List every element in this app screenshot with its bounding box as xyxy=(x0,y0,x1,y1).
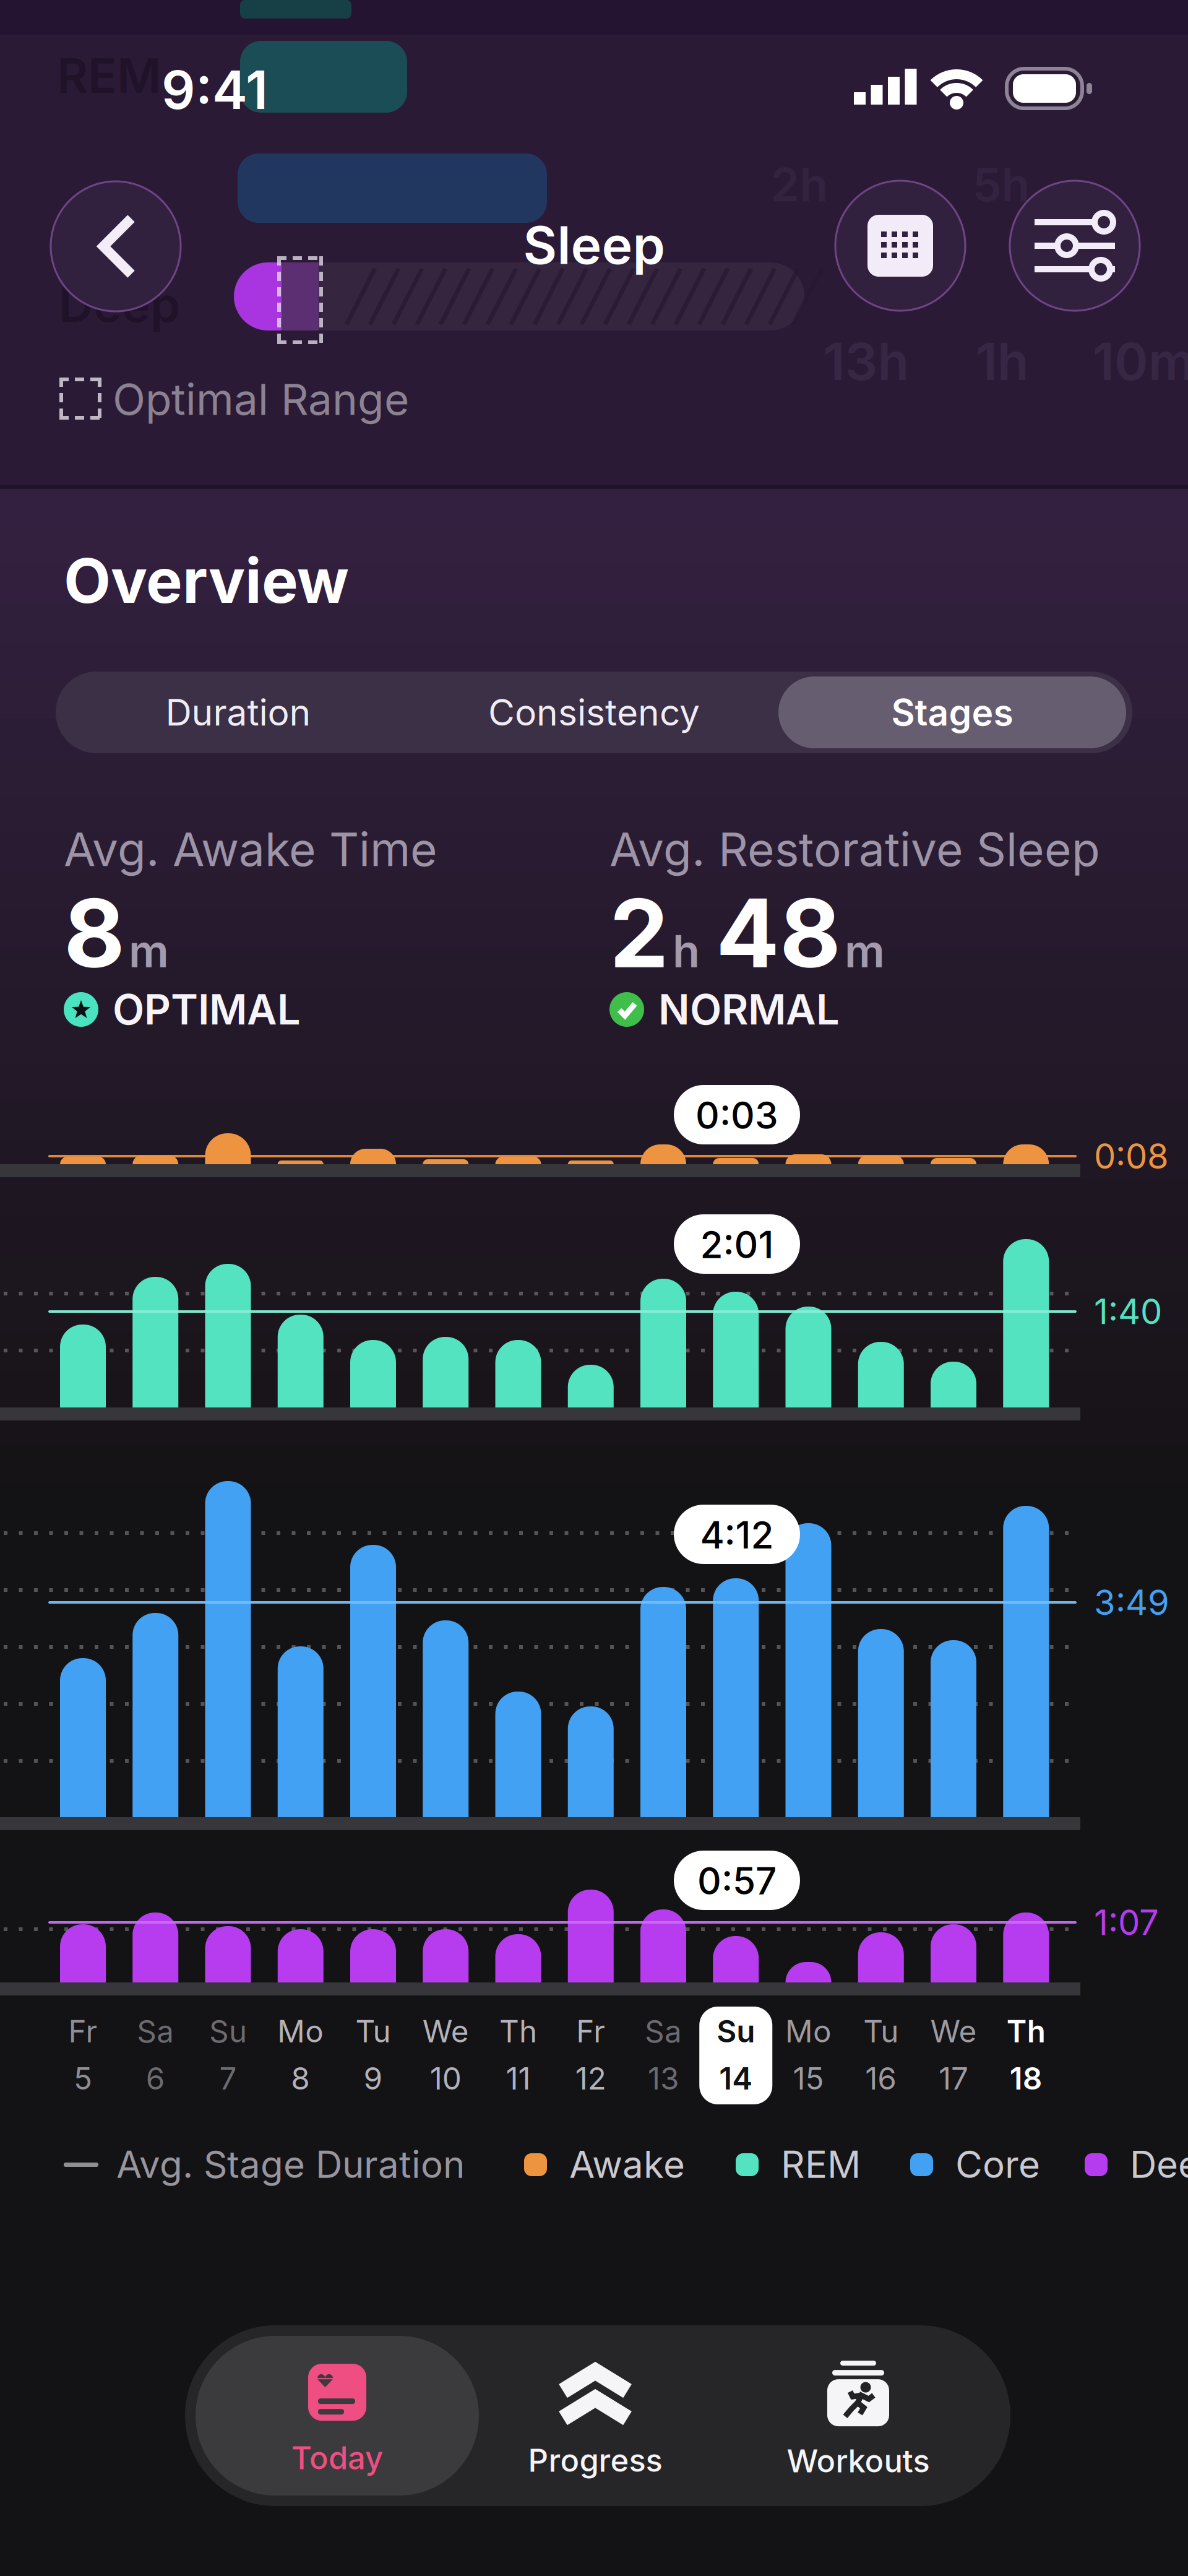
button[interactable]: Su 7 xyxy=(192,2006,264,2104)
staticText: m xyxy=(129,925,169,977)
button[interactable]: Progress xyxy=(471,2340,719,2500)
staticText: 12 xyxy=(575,2060,606,2096)
staticText: 8 xyxy=(64,877,125,988)
staticText: Avg. Stage Duration xyxy=(116,2142,465,2186)
staticText: 10m xyxy=(1093,331,1188,392)
staticText: Mo xyxy=(785,2013,832,2049)
button[interactable]: Stages xyxy=(778,672,1126,753)
staticText: 11 xyxy=(506,2060,531,2096)
staticText: 2h xyxy=(771,157,828,212)
staticText: Avg. Awake Time xyxy=(64,822,437,876)
staticText: 0:03 xyxy=(695,1093,778,1137)
staticText: 14 xyxy=(719,2060,753,2096)
staticText: 18 xyxy=(1010,2060,1042,2096)
staticText: 4:12 xyxy=(700,1513,774,1557)
staticText: OPTIMAL xyxy=(113,985,301,1034)
staticText: Avg. Restorative Sleep xyxy=(609,822,1100,876)
button[interactable]: Mo 15 xyxy=(773,2006,844,2104)
staticText: m xyxy=(845,925,885,977)
button[interactable]: Fr 5 xyxy=(47,2006,119,2104)
staticText: 9 xyxy=(364,2060,383,2096)
staticText: Optimal Range xyxy=(113,374,409,425)
staticText: 8 xyxy=(291,2060,310,2096)
staticText: 5h xyxy=(972,157,1030,212)
staticText: REM xyxy=(781,2142,861,2186)
staticText: 16 xyxy=(865,2060,897,2096)
staticText: Duration xyxy=(166,691,311,734)
button[interactable]: Mo 8 xyxy=(265,2006,336,2104)
staticText: 2:01 xyxy=(700,1223,774,1267)
button[interactable]: Back xyxy=(51,181,181,311)
staticText: Deep xyxy=(1130,2142,1188,2186)
staticText: 10 xyxy=(430,2060,461,2096)
staticText: We xyxy=(422,2013,469,2049)
button[interactable]: Fr 12 xyxy=(555,2006,627,2104)
button[interactable]: Calendar xyxy=(835,181,965,311)
staticText: 1:07 xyxy=(1094,1902,1159,1943)
staticText: 7 xyxy=(219,2060,237,2096)
button[interactable]: Tu 16 xyxy=(845,2006,917,2104)
staticText: Sleep xyxy=(523,214,665,276)
staticText: Core xyxy=(955,2142,1040,2186)
staticText: Awake xyxy=(569,2142,685,2186)
staticText: Consistency xyxy=(488,691,700,734)
staticText: NORMAL xyxy=(658,985,840,1034)
staticText: h xyxy=(673,925,700,977)
staticText: Mo xyxy=(277,2013,324,2049)
button[interactable]: We 10 xyxy=(410,2006,482,2104)
staticText: 13h xyxy=(823,331,909,392)
staticText: 9:41 xyxy=(161,59,268,121)
staticText: Today xyxy=(291,2439,383,2476)
button[interactable]: Su 14 xyxy=(700,2006,772,2104)
button[interactable]: Consistency xyxy=(415,672,773,753)
staticText: 5 xyxy=(74,2060,92,2096)
staticText: Progress xyxy=(528,2442,662,2479)
staticText: Workouts xyxy=(787,2442,930,2479)
button[interactable]: Th 18 xyxy=(990,2006,1062,2104)
staticText: Su xyxy=(209,2013,247,2049)
staticText: REM xyxy=(57,47,161,104)
button[interactable]: Tu 9 xyxy=(337,2006,409,2104)
staticText: Overview xyxy=(64,545,349,617)
staticText: 0:57 xyxy=(697,1859,777,1903)
staticText: 1h xyxy=(976,331,1029,392)
button[interactable]: Sa 6 xyxy=(120,2006,191,2104)
button[interactable]: Sa 13 xyxy=(627,2006,699,2104)
button[interactable]: Duration xyxy=(65,672,411,753)
staticText: Sa xyxy=(645,2013,682,2049)
staticText: 3:49 xyxy=(1094,1582,1169,1623)
button[interactable]: Workouts xyxy=(734,2340,982,2500)
staticText: Sa xyxy=(137,2013,174,2049)
staticText: Stages xyxy=(891,691,1013,734)
staticText: 2 xyxy=(609,877,669,988)
staticText: Su xyxy=(717,2013,755,2049)
staticText: 6 xyxy=(146,2060,165,2096)
staticText: Th xyxy=(499,2013,537,2049)
button[interactable]: Filters xyxy=(1010,181,1140,311)
staticText: We xyxy=(930,2013,977,2049)
staticText: 15 xyxy=(793,2060,824,2096)
staticText: 1:40 xyxy=(1094,1291,1162,1332)
button[interactable]: Th 11 xyxy=(482,2006,554,2104)
button[interactable]: Today xyxy=(196,2340,479,2500)
staticText: Tu xyxy=(863,2013,899,2049)
staticText: Tu xyxy=(355,2013,391,2049)
staticText: Th xyxy=(1007,2013,1046,2049)
staticText: Fr xyxy=(576,2013,605,2049)
staticText: Fr xyxy=(68,2013,97,2049)
staticText: 13 xyxy=(648,2060,679,2096)
staticText: 0:08 xyxy=(1094,1136,1169,1177)
staticText: Deep xyxy=(59,276,180,333)
staticText: 48 xyxy=(716,877,841,988)
staticText: 17 xyxy=(939,2060,968,2096)
button[interactable]: We 17 xyxy=(918,2006,989,2104)
